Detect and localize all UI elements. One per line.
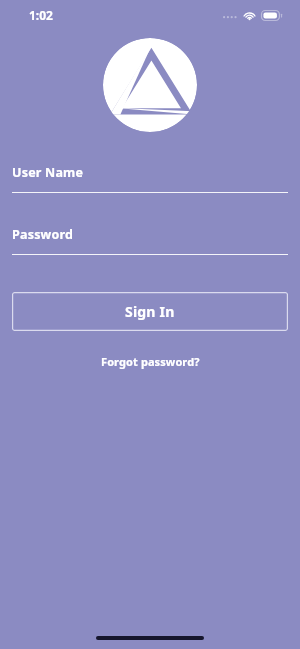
button[interactable]: User Name	[0, 164, 300, 193]
staticText: Forgot password?	[101, 354, 200, 369]
other: App logo	[103, 38, 197, 132]
staticText: User Name	[12, 164, 84, 181]
button[interactable]: Password	[0, 226, 300, 255]
staticText: Sign In	[125, 302, 175, 321]
button[interactable]: Forgot password?	[91, 350, 210, 373]
staticText: 1:02	[29, 7, 53, 23]
button[interactable]: Sign In	[12, 292, 288, 331]
staticText: Password	[12, 226, 74, 243]
